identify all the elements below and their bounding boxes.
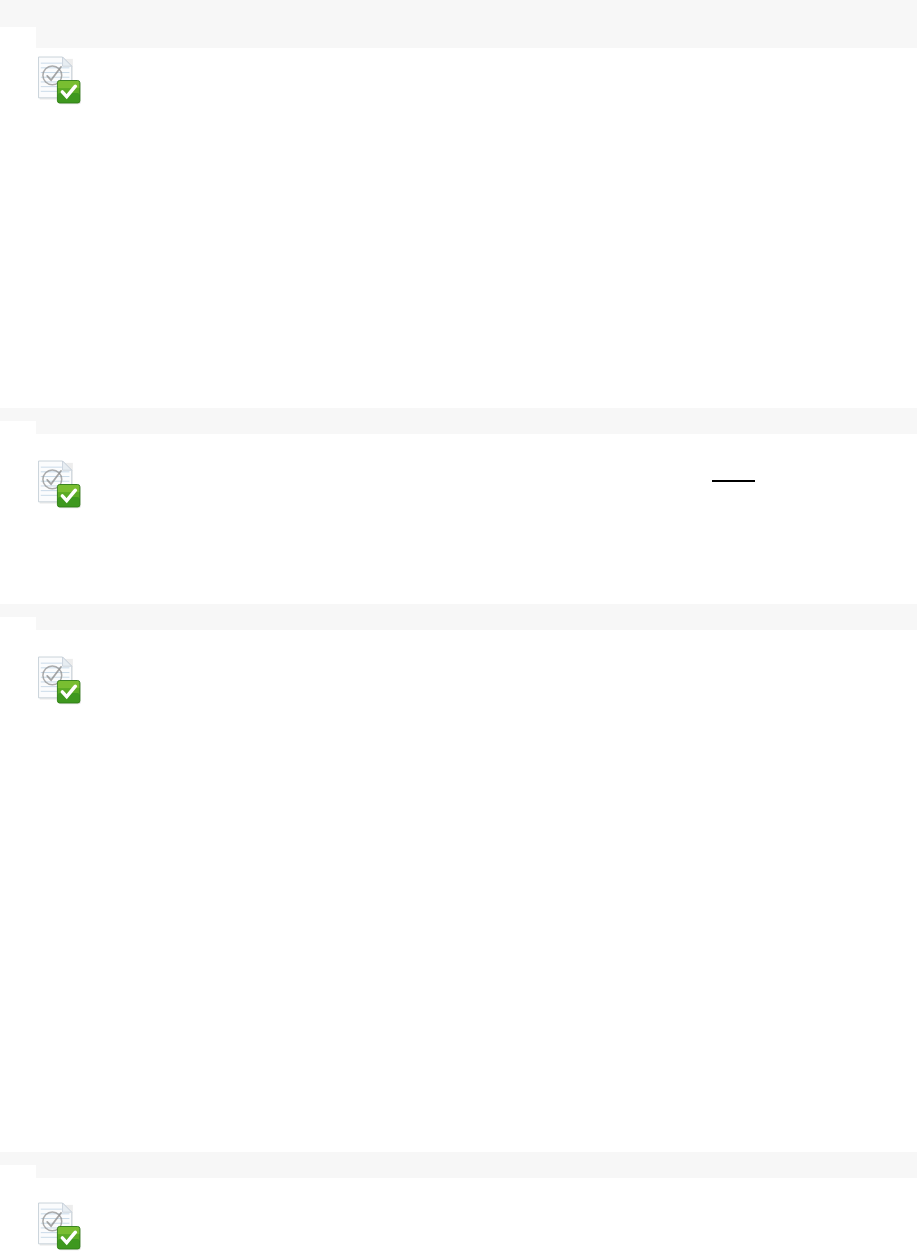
button[interactable]: Image 4 [37, 1202, 86, 1251]
button[interactable]: Image 1 [37, 56, 86, 105]
button[interactable]: Link [712, 466, 756, 484]
button[interactable]: Image 3 [37, 656, 86, 705]
button[interactable]: Image 2 [37, 460, 86, 509]
